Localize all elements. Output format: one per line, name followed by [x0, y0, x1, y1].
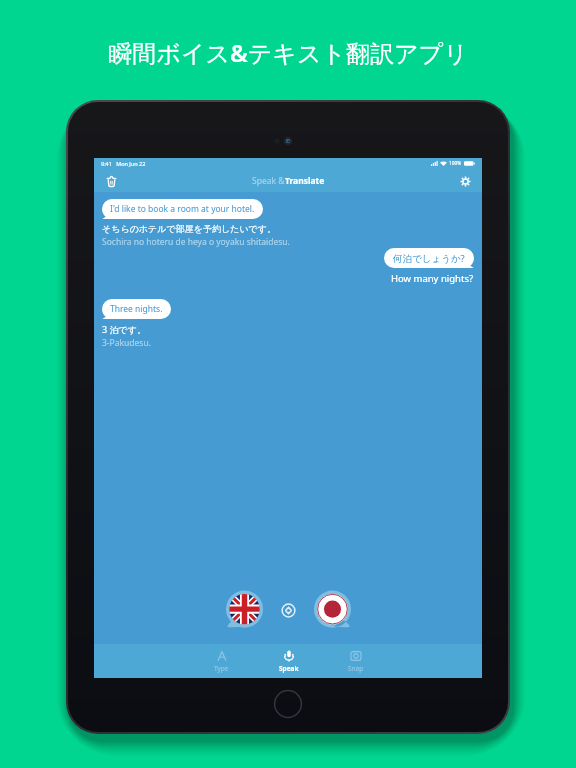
staticText: Speak: [279, 664, 299, 673]
staticText: How many nights?: [391, 272, 474, 285]
staticText: 瞬間ボイス&テキスト翻訳アプリ: [108, 36, 468, 69]
staticText: Three nights.: [110, 303, 163, 315]
button[interactable]: Three nights.: [102, 299, 171, 319]
button[interactable]: I'd like to book a room at your hotel.: [102, 199, 263, 219]
staticText: Sochira no hoteru de heya o yoyaku shita…: [102, 236, 290, 248]
button[interactable]: Type: [188, 644, 255, 678]
staticText: 100%: [449, 160, 462, 167]
button[interactable]: Settings: [455, 171, 475, 191]
button[interactable]: Speak: [255, 644, 322, 678]
button[interactable]: Japanese: [312, 590, 352, 630]
staticText: 3 泊です。: [102, 323, 146, 335]
staticText: I'd like to book a room at your hotel.: [110, 203, 255, 215]
staticText: 9:41 Mon Jun 22: [101, 160, 146, 167]
button[interactable]: Swap languages: [269, 591, 307, 629]
staticText: 3-Pakudesu.: [102, 337, 151, 349]
staticText: そちらのホテルで部屋を予約したいです。: [102, 223, 276, 234]
staticText: Snap: [348, 664, 364, 673]
button[interactable]: Snap: [322, 644, 389, 678]
button[interactable]: English: [224, 590, 264, 630]
button[interactable]: 何泊でしょうか?: [384, 248, 474, 268]
staticText: 何泊でしょうか?: [393, 252, 465, 265]
staticText: Speak &: [252, 175, 285, 187]
staticText: Type: [214, 664, 229, 673]
button[interactable]: Clear conversation: [101, 171, 121, 191]
staticText: Translate: [285, 175, 325, 187]
